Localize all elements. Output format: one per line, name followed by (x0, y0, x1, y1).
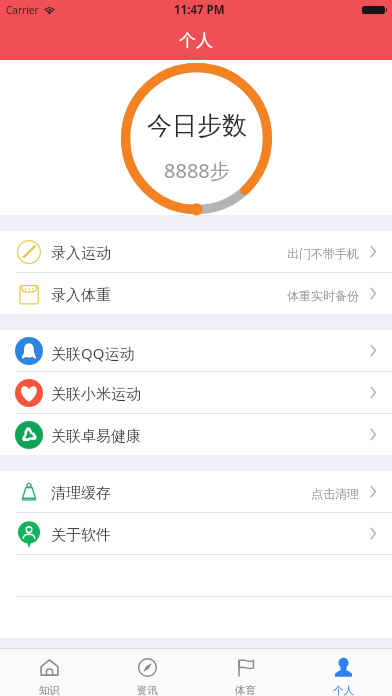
staticText: 清理缓存 (51, 484, 111, 503)
staticText: 关于软件 (51, 526, 111, 545)
staticText: 11:47 PM (174, 2, 225, 18)
staticText: 知识 (39, 684, 60, 696)
button[interactable]: 关联卓易健康 (0, 414, 392, 455)
button[interactable]: 关于软件 (0, 513, 392, 554)
button[interactable]: 录入运动 (0, 231, 392, 272)
button[interactable]: 录入体重 (0, 273, 392, 314)
staticText: 录入运动 (51, 244, 111, 263)
staticText: 体重实时备份 (287, 288, 359, 303)
staticText: 关联QQ运动 (51, 343, 135, 363)
button[interactable]: 个人 (294, 649, 392, 696)
button[interactable]: 关联小米运动 (0, 372, 392, 413)
staticText: 出门不带手机 (287, 246, 359, 261)
button[interactable]: 个人 (0, 20, 392, 60)
staticText: 关联小米运动 (51, 385, 141, 404)
button[interactable]: 体育 (196, 649, 294, 696)
staticText: 今日步数 (147, 110, 247, 141)
staticText: 个人 (333, 684, 354, 696)
button[interactable]: 关联QQ运动 (0, 330, 392, 371)
button[interactable]: 资讯 (98, 649, 196, 696)
staticText: 体育 (235, 684, 256, 696)
button[interactable]: 知识 (0, 649, 98, 696)
staticText: 录入体重 (51, 286, 111, 305)
staticText: 资讯 (137, 684, 158, 696)
staticText: 点击清理 (311, 486, 359, 501)
staticText: 关联卓易健康 (51, 427, 141, 446)
staticText: 个人 (179, 30, 213, 51)
staticText: Carrier (6, 3, 39, 17)
button[interactable]: 清理缓存 (0, 471, 392, 512)
staticText: 8888步 (164, 157, 230, 184)
